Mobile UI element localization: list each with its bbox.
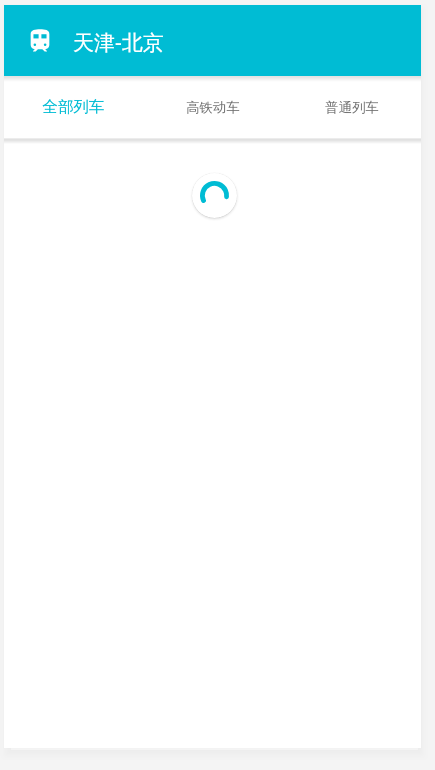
button[interactable]: Train <box>26 27 54 55</box>
staticText: 高铁动车 <box>186 99 240 116</box>
staticText: 全部列车 <box>42 97 105 117</box>
button[interactable]: 普通列车 <box>282 76 421 138</box>
button[interactable]: 全部列车 <box>4 76 143 138</box>
staticText: 普通列车 <box>325 99 379 116</box>
staticText: 天津-北京 <box>73 28 164 57</box>
button[interactable]: 高铁动车 <box>143 76 282 138</box>
